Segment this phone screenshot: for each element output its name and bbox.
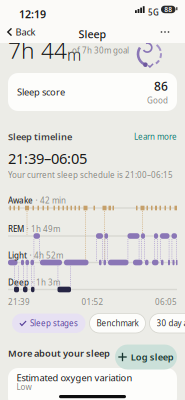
button[interactable]: Sleep score — [8, 73, 177, 111]
staticText: Estimated oxygen variation — [16, 371, 132, 384]
staticText: Benchmark — [96, 318, 138, 328]
staticText: 4h 52m — [34, 250, 63, 261]
staticText: More about your sleep — [8, 347, 110, 359]
staticText: 1h 49m — [31, 223, 60, 234]
button[interactable]: Back — [7, 24, 35, 40]
staticText: 21:39 — [8, 296, 30, 307]
button[interactable]: More options — [156, 25, 174, 39]
button[interactable]: Estimated oxygen variation, Low — [8, 368, 177, 400]
staticText: 01:52 — [81, 296, 103, 307]
staticText: Deep — [8, 277, 29, 288]
staticText: Awake — [8, 195, 33, 206]
button[interactable]: Learn more — [134, 131, 177, 142]
staticText: Sleep — [78, 27, 106, 41]
staticText: Sleep score — [17, 86, 65, 98]
staticText: 7h 44 — [8, 35, 67, 65]
staticText: REM — [8, 223, 24, 234]
staticText: 06:05 — [155, 296, 177, 307]
staticText: of 7h 30m goal — [72, 45, 129, 56]
staticText: 5G — [148, 7, 159, 18]
staticText: · — [31, 277, 33, 288]
staticText: 1h 3m — [36, 277, 60, 288]
button[interactable]: 30 day avera — [149, 313, 185, 333]
staticText: Back — [15, 26, 35, 38]
staticText: Good — [147, 95, 168, 106]
staticText: Sleep stages — [30, 318, 78, 328]
staticText: 12:19 — [19, 7, 46, 21]
staticText: Low — [16, 381, 31, 392]
staticText: Learn more — [134, 131, 177, 142]
staticText: Sleep timeline — [8, 130, 72, 143]
staticText: Light — [8, 250, 27, 261]
staticText: · — [29, 250, 31, 261]
button[interactable]: Log sleep — [115, 344, 177, 369]
staticText: 86 — [154, 78, 168, 94]
staticText: 30 day avera — [156, 318, 185, 328]
staticText: · — [26, 223, 28, 234]
staticText: 42 min — [40, 195, 66, 206]
button[interactable]: Benchmark — [89, 313, 145, 333]
staticText: · — [35, 195, 37, 206]
staticText: Log sleep — [131, 351, 174, 363]
staticText: 21:39–06:05 — [8, 148, 87, 168]
staticText: Your current sleep schedule is 21:00–06:… — [8, 169, 173, 180]
button[interactable]: Sleep stages — [12, 313, 85, 333]
staticText: 88 — [164, 5, 172, 14]
staticText: m — [67, 44, 81, 65]
